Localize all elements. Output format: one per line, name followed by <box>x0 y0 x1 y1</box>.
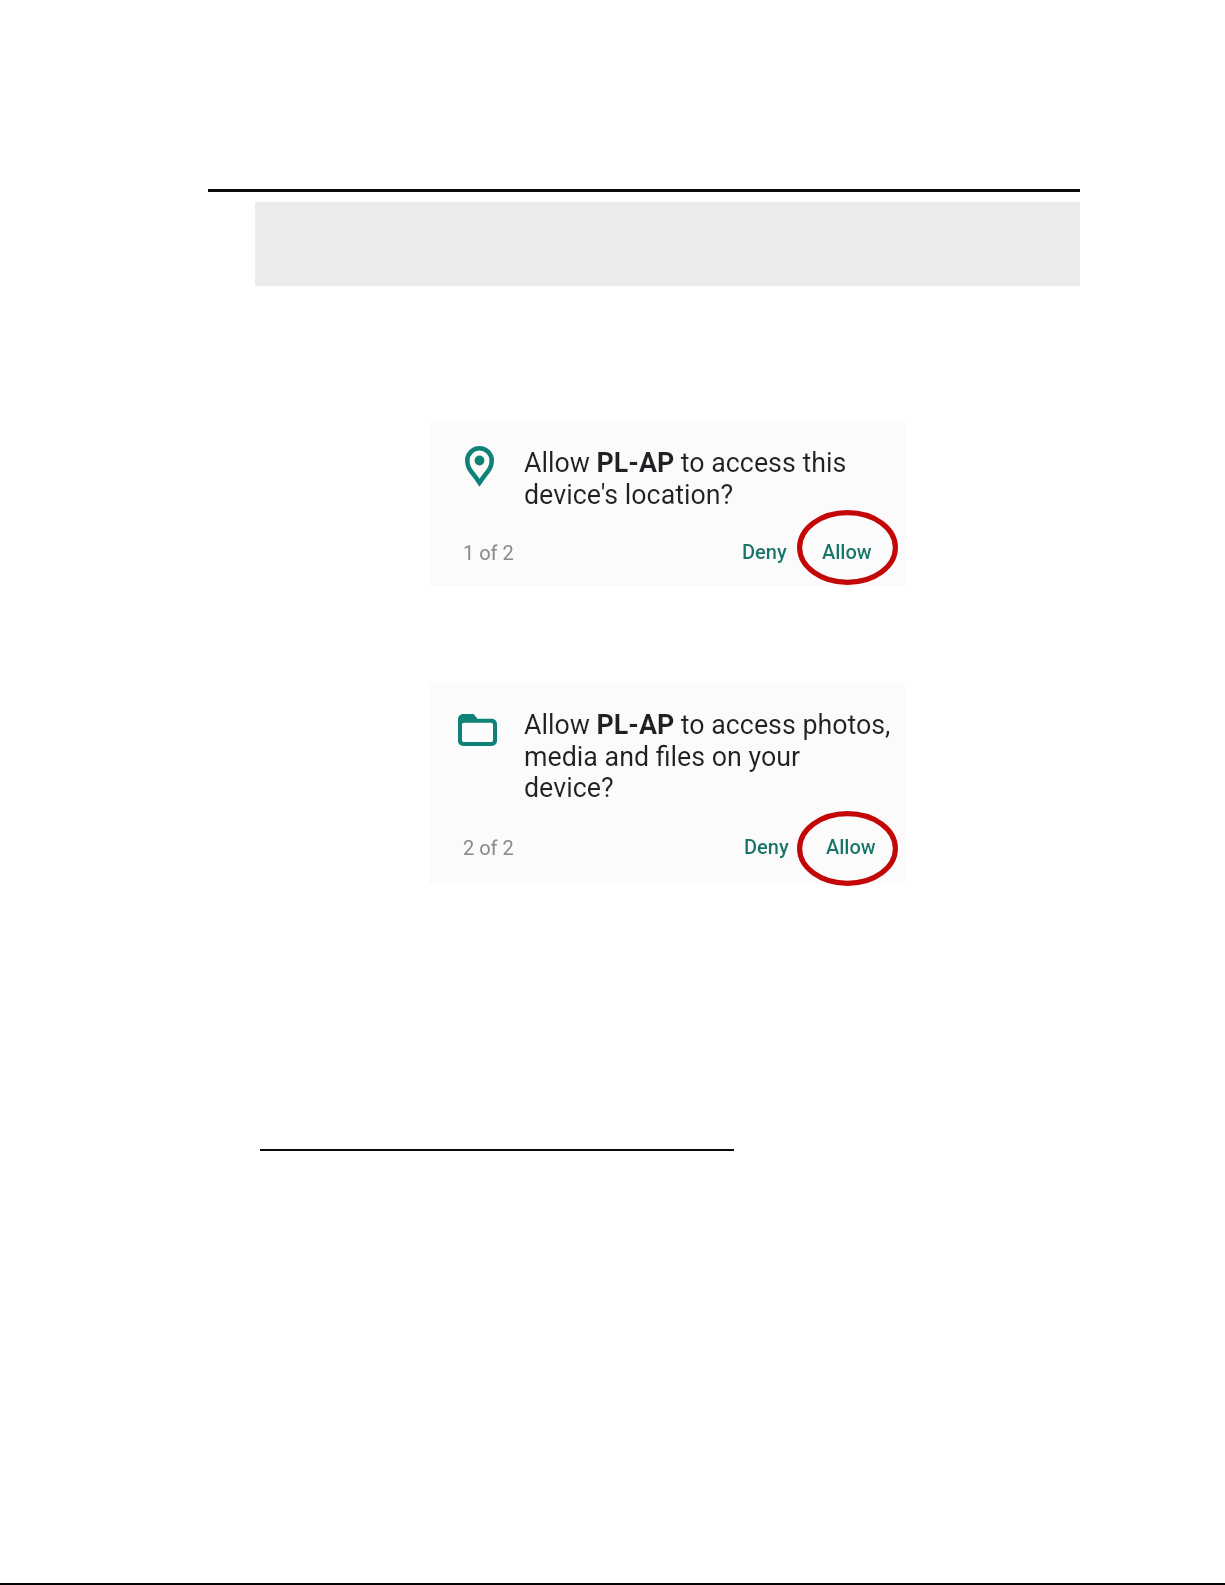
button[interactable]: Allow <box>806 528 888 574</box>
staticText: media and files on your <box>524 741 801 772</box>
staticText: 2 of 2 <box>463 836 514 859</box>
button[interactable]: Deny <box>727 823 805 869</box>
staticText: Allow <box>822 540 872 563</box>
staticText: device's location? <box>524 479 734 510</box>
staticText: Allow PL-AP to access photos, <box>524 709 891 740</box>
staticText: Deny <box>744 835 789 858</box>
other: Files <box>458 714 497 746</box>
other: Location <box>465 446 494 485</box>
button[interactable]: Location <box>429 421 905 586</box>
staticText: 1 of 2 <box>463 541 514 564</box>
button[interactable]: Allow <box>810 823 892 869</box>
staticText: Allow PL-AP to access this <box>524 447 847 478</box>
staticText: device? <box>524 772 614 803</box>
staticText: Allow <box>826 835 876 858</box>
staticText: Deny <box>742 540 787 563</box>
button[interactable]: Files <box>429 683 905 884</box>
button[interactable]: Deny <box>725 528 803 574</box>
